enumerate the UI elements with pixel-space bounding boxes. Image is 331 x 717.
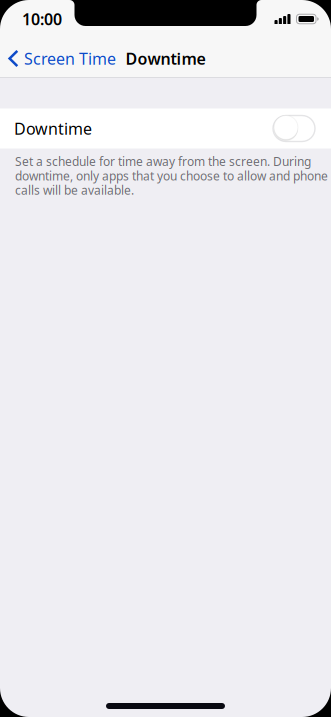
button[interactable]: Downtime [0, 108, 331, 148]
staticText: 10:00 [22, 8, 62, 30]
staticText: Screen Time [24, 48, 116, 69]
button[interactable]: Screen Time [0, 33, 122, 77]
staticText: Downtime [125, 48, 205, 69]
staticText: Set a schedule for time away from the sc… [15, 153, 328, 198]
staticText: Downtime [14, 118, 92, 139]
